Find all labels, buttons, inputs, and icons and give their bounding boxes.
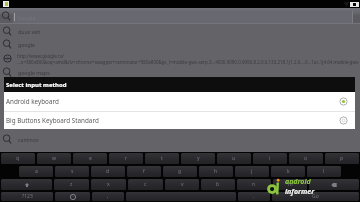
button[interactable]: v bbox=[165, 179, 199, 190]
button[interactable]: t bbox=[145, 153, 179, 164]
button[interactable]: google bbox=[0, 38, 360, 51]
staticText: o bbox=[304, 155, 308, 162]
button[interactable]: Go bbox=[272, 192, 359, 201]
button[interactable]: e bbox=[73, 153, 107, 164]
staticText: w bbox=[52, 155, 56, 162]
button[interactable]: b bbox=[201, 179, 235, 190]
button[interactable]: y bbox=[181, 153, 215, 164]
button[interactable]: Android keyboard bbox=[4, 92, 355, 111]
button[interactable]: p bbox=[325, 153, 359, 164]
button[interactable]: n bbox=[237, 179, 271, 190]
button[interactable]: ?123 bbox=[1, 192, 53, 201]
button[interactable]: o bbox=[289, 153, 323, 164]
staticText: m bbox=[288, 181, 293, 188]
button[interactable]: k bbox=[271, 166, 305, 177]
staticText: . bbox=[253, 193, 255, 200]
button[interactable]: s bbox=[55, 166, 89, 177]
staticText: t bbox=[161, 155, 163, 162]
staticText: Select input method bbox=[6, 81, 67, 89]
staticText: s bbox=[71, 168, 74, 175]
button[interactable]: Shift bbox=[1, 179, 52, 190]
button[interactable]: c bbox=[128, 179, 163, 190]
staticText: h bbox=[214, 168, 218, 175]
button[interactable]: r bbox=[109, 153, 143, 164]
button[interactable]: google maps bbox=[0, 66, 360, 79]
button[interactable]: x bbox=[91, 179, 126, 190]
staticText: d bbox=[106, 168, 110, 175]
staticText: p bbox=[340, 155, 344, 162]
staticText: f bbox=[143, 168, 145, 175]
staticText: ...n=580x800&oq=amd&rlz=chrome+swagger+r… bbox=[17, 59, 360, 65]
staticText: j bbox=[251, 168, 253, 175]
button[interactable]: h bbox=[199, 166, 233, 177]
staticText: g bbox=[178, 168, 182, 175]
staticText: Android keyboard bbox=[6, 97, 339, 106]
staticText: q bbox=[16, 155, 20, 162]
staticText: u bbox=[232, 155, 236, 162]
button[interactable]: . bbox=[238, 192, 270, 201]
staticText: x bbox=[107, 181, 110, 188]
button[interactable]: j bbox=[235, 166, 269, 177]
button[interactable] bbox=[126, 192, 236, 201]
staticText: e bbox=[89, 155, 92, 162]
button[interactable]: duux veh bbox=[0, 25, 360, 38]
button[interactable]: g bbox=[163, 166, 197, 177]
staticText: http://www.google.ro/ bbox=[17, 53, 65, 59]
staticText: y bbox=[197, 155, 200, 162]
staticText: google maps bbox=[18, 69, 50, 76]
staticText: l bbox=[323, 168, 325, 175]
button[interactable]: Emoji bbox=[55, 192, 90, 201]
button[interactable]: , bbox=[92, 192, 124, 201]
button[interactable]: Big Buttons Keyboard Standard bbox=[4, 112, 355, 129]
staticText: v bbox=[181, 181, 184, 188]
staticText: b bbox=[216, 181, 220, 188]
staticText: i bbox=[269, 155, 271, 162]
staticText: z bbox=[70, 181, 73, 188]
staticText: caminos bbox=[18, 136, 39, 143]
staticText: informer bbox=[285, 187, 315, 197]
button[interactable]: w bbox=[37, 153, 71, 164]
staticText: ?123 bbox=[22, 193, 33, 200]
button[interactable]: f bbox=[127, 166, 161, 177]
staticText: google bbox=[18, 41, 35, 48]
staticText: Go bbox=[312, 193, 319, 200]
button[interactable]: a bbox=[19, 166, 53, 177]
button[interactable]: m bbox=[273, 179, 307, 190]
staticText: n bbox=[252, 181, 256, 188]
button[interactable]: q bbox=[1, 153, 35, 164]
staticText: duux veh bbox=[18, 28, 41, 35]
button[interactable]: z bbox=[54, 179, 89, 190]
staticText: , bbox=[107, 193, 109, 200]
button[interactable]: l bbox=[307, 166, 341, 177]
button[interactable]: u bbox=[217, 153, 251, 164]
staticText: android bbox=[285, 177, 311, 187]
staticText: c bbox=[144, 181, 147, 188]
staticText: r bbox=[125, 155, 128, 162]
staticText: k bbox=[287, 168, 290, 175]
button[interactable]: i bbox=[253, 153, 287, 164]
button[interactable]: http://www.google.ro/ bbox=[0, 51, 360, 66]
staticText: a bbox=[35, 168, 38, 175]
staticText: Big Buttons Keyboard Standard bbox=[6, 116, 339, 125]
button[interactable]: caminos bbox=[0, 133, 360, 146]
button[interactable]: d bbox=[91, 166, 125, 177]
button[interactable]: Backspace bbox=[309, 179, 359, 190]
